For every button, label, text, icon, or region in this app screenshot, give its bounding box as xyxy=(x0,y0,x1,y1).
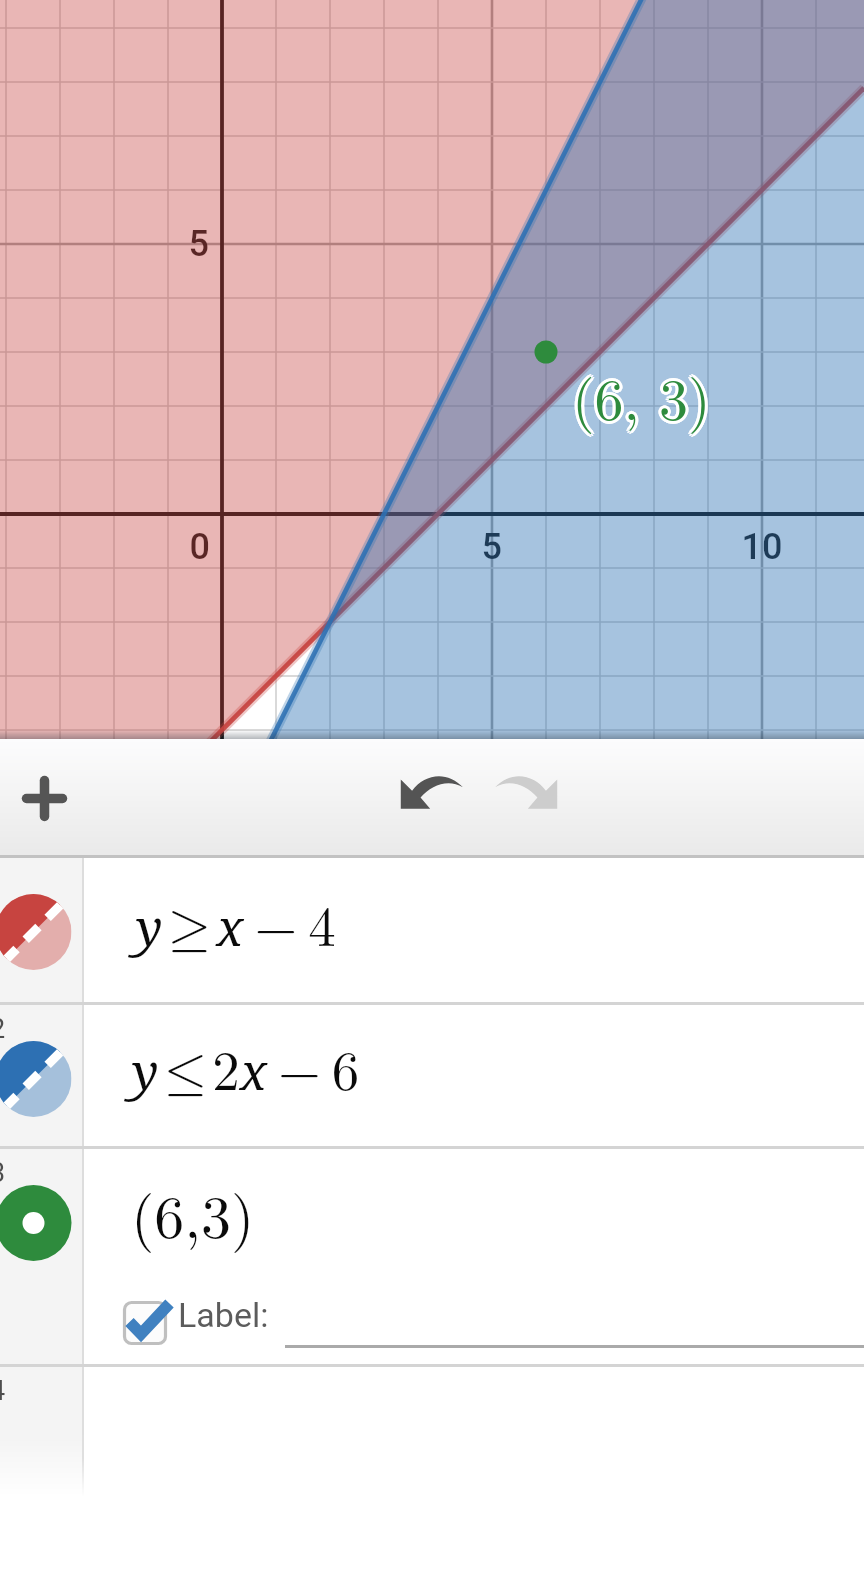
staticText: (6, 3) xyxy=(574,357,713,439)
staticText: (6, 3) xyxy=(575,355,714,437)
button[interactable]: 1 xyxy=(0,858,864,1005)
staticText: (6, 3) xyxy=(572,355,711,437)
button[interactable]: 4 xyxy=(0,1367,864,1497)
staticText: y ≥ x − 4 xyxy=(136,884,336,962)
button[interactable]: 3 xyxy=(0,1149,864,1367)
staticText: (6, 3) xyxy=(572,358,711,440)
button[interactable]: Redo xyxy=(484,767,564,823)
staticText: (6, 3) xyxy=(574,353,713,435)
button[interactable]: Add expression xyxy=(8,762,81,835)
staticText: 4 xyxy=(0,1375,6,1407)
staticText: (6, 3) xyxy=(569,355,708,437)
staticText: (6, 3) xyxy=(570,353,709,435)
staticText: y ≤ 2x − 6 xyxy=(132,1028,360,1106)
button[interactable]: Show label xyxy=(117,1295,173,1351)
button[interactable]: 2 xyxy=(0,1005,864,1149)
staticText: (6,3) xyxy=(131,1170,255,1255)
button[interactable]: Undo xyxy=(394,767,474,823)
staticText: 2 xyxy=(0,1013,6,1045)
staticText: 3 xyxy=(0,1157,6,1189)
staticText: Label: xyxy=(178,1295,269,1335)
staticText: (6, 3) xyxy=(572,352,711,434)
staticText: (6, 3) xyxy=(570,357,709,439)
